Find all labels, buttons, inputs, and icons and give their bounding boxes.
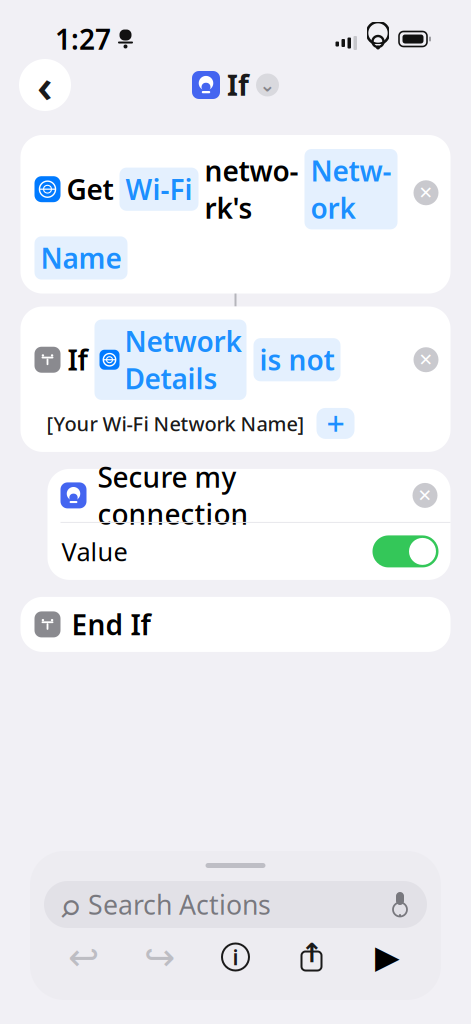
staticText: network's	[204, 152, 298, 226]
button[interactable]: Details	[220, 942, 250, 972]
staticText: Get	[66, 171, 113, 208]
staticText: ⌕	[60, 872, 80, 936]
button[interactable]: Remove action	[413, 180, 438, 205]
staticText: ⌄	[259, 74, 275, 96]
staticText: ✕	[417, 486, 432, 505]
button[interactable]: Value	[47, 523, 450, 580]
staticText: 1:27	[55, 20, 111, 58]
button[interactable]: Add value	[316, 408, 354, 439]
staticText: is not	[259, 341, 334, 378]
button[interactable]: Secure my connection	[47, 469, 450, 522]
button[interactable]: Undo	[67, 942, 99, 972]
staticText: Search Actions	[88, 887, 271, 922]
staticText: End If	[71, 606, 150, 643]
staticText: ▶	[375, 939, 400, 975]
staticText: Secure my connection	[97, 458, 248, 533]
staticText: ✕	[418, 350, 433, 370]
staticText: ‹	[37, 55, 53, 115]
staticText: Value	[61, 535, 127, 568]
staticText: i	[232, 943, 238, 971]
staticText: Wi-Fi	[125, 171, 192, 208]
staticText: ↑	[300, 938, 322, 968]
button[interactable]: Remove action	[413, 347, 438, 372]
button[interactable]: Run shortcut	[373, 944, 401, 970]
staticText: Network	[310, 152, 391, 226]
button[interactable]: Remove action	[412, 483, 437, 508]
staticText: ↩	[68, 936, 99, 978]
staticText: Network Details	[124, 322, 241, 397]
staticText: ✕	[418, 183, 433, 203]
staticText: +	[326, 402, 344, 445]
button[interactable]: ⌕	[44, 881, 427, 928]
staticText: If	[67, 341, 87, 378]
button[interactable]: If	[192, 66, 279, 104]
button[interactable]: Back	[19, 59, 71, 111]
staticText: ↪	[144, 936, 175, 978]
button[interactable]: Redo	[143, 942, 175, 972]
staticText: [Your Wi-Fi Network Name]	[46, 410, 304, 437]
staticText: If	[227, 66, 249, 104]
button[interactable]: Get	[20, 135, 450, 293]
button[interactable]: End If	[20, 597, 450, 652]
staticText: Name	[40, 239, 121, 277]
button[interactable]: If	[20, 306, 450, 452]
button[interactable]: Share	[298, 942, 324, 971]
